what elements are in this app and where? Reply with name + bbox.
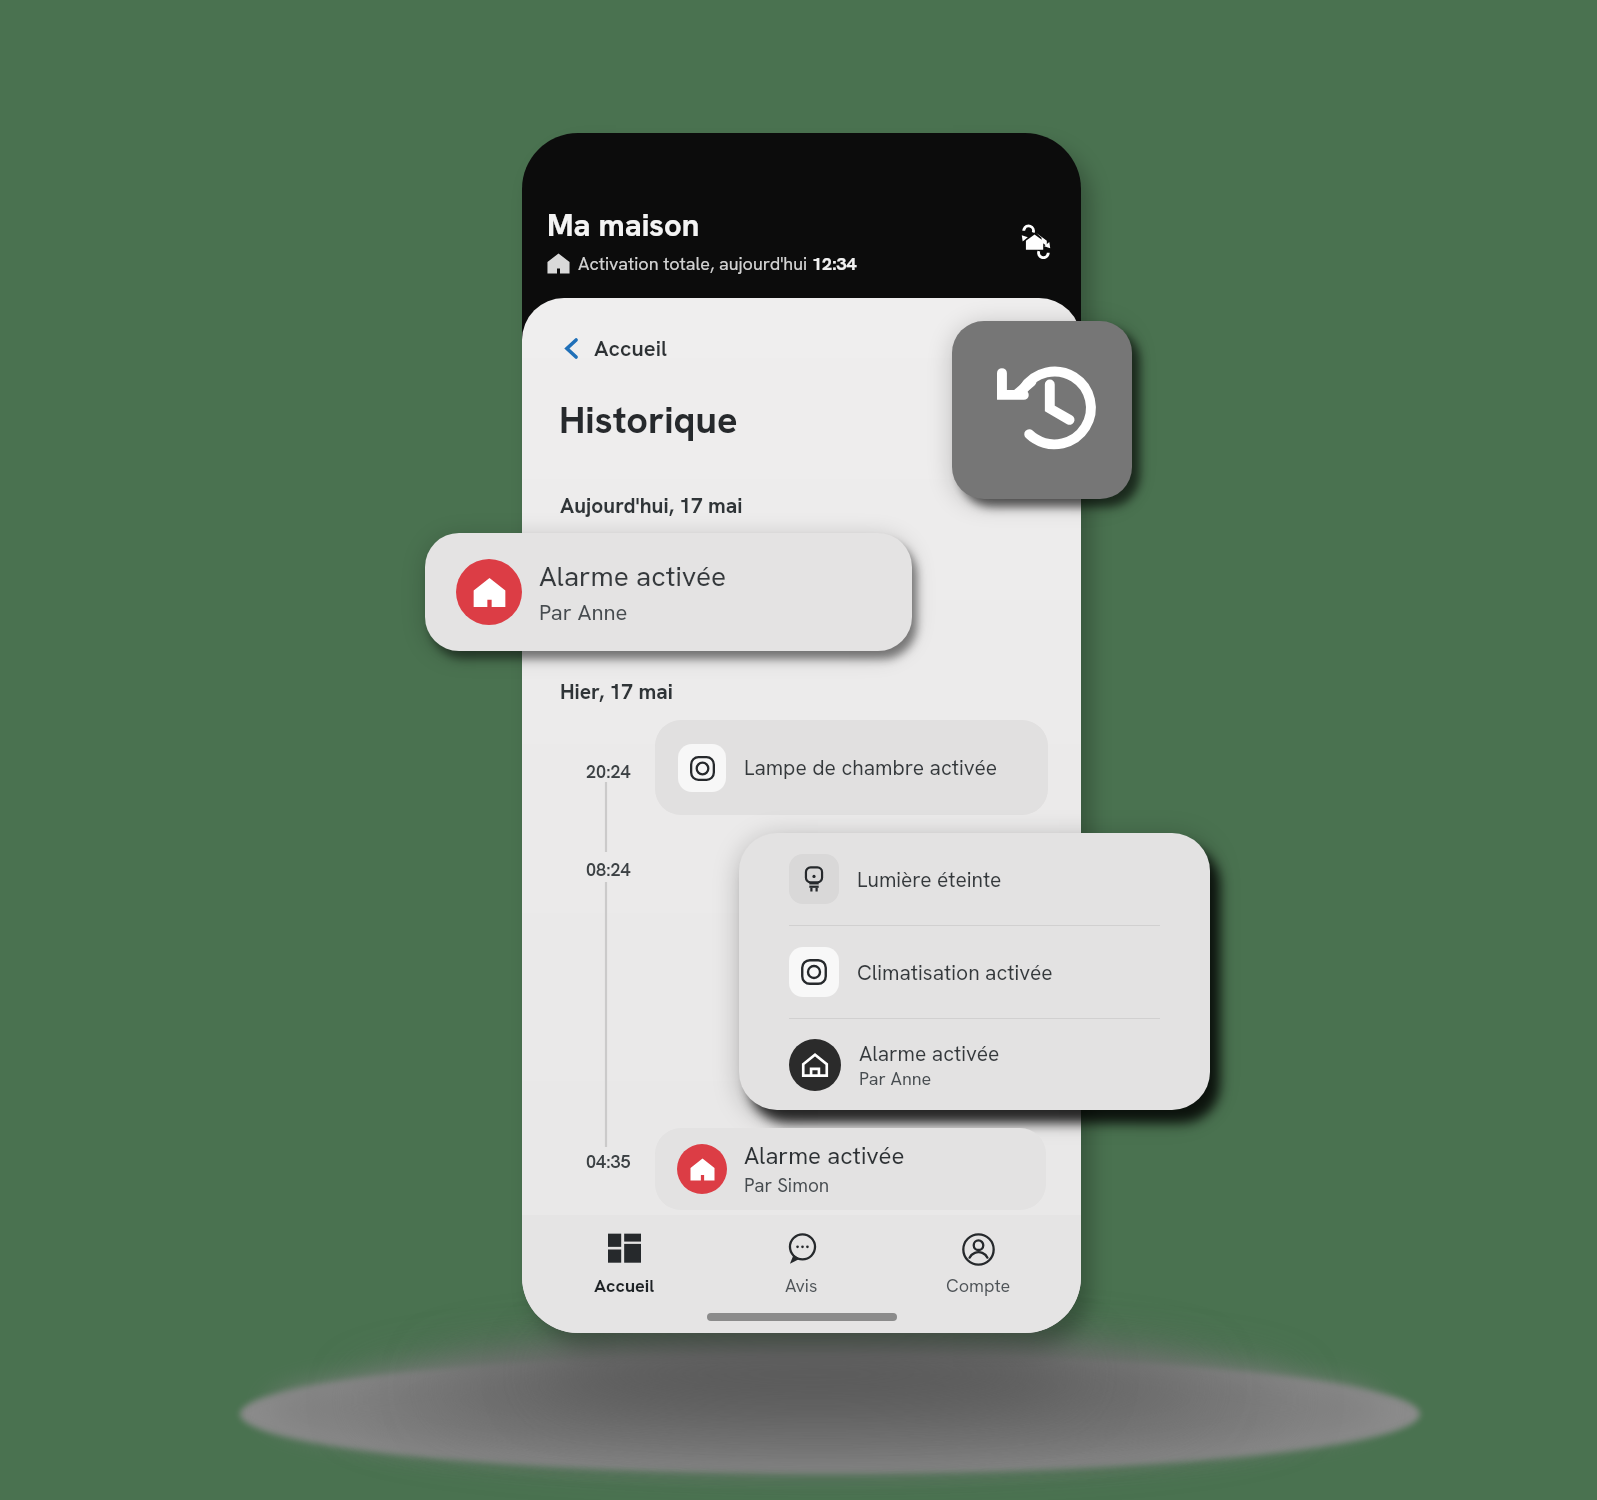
- button[interactable]: Climatisation activée: [739, 926, 1210, 1018]
- button[interactable]: Changer de maison: [1013, 217, 1059, 263]
- staticText: Alarme activée: [859, 1040, 1000, 1067]
- button[interactable]: Historique: [952, 321, 1132, 499]
- staticText: Accueil: [594, 1274, 655, 1297]
- staticText: 04:35: [586, 1150, 631, 1173]
- button[interactable]: Alarme activée: [655, 1128, 1046, 1210]
- staticText: Historique: [559, 395, 738, 445]
- staticText: Compte: [946, 1274, 1011, 1297]
- staticText: Par Simon: [744, 1173, 830, 1198]
- staticText: Alarme activée: [744, 1140, 905, 1171]
- button[interactable]: Accueil: [536, 1215, 713, 1297]
- staticText: Par Anne: [859, 1067, 932, 1090]
- staticText: Ma maison: [547, 205, 700, 245]
- staticText: Activation totale, aujourd'hui: [578, 252, 812, 275]
- staticText: 12:34: [812, 252, 857, 275]
- staticText: Climatisation activée: [857, 959, 1053, 986]
- button[interactable]: Compte: [890, 1215, 1067, 1297]
- button[interactable]: Avis: [713, 1215, 890, 1297]
- staticText: Accueil: [594, 334, 667, 363]
- staticText: 20:24: [586, 760, 631, 783]
- button[interactable]: Accueil: [560, 334, 667, 363]
- staticText: Par Anne: [539, 598, 628, 627]
- button[interactable]: Alarme activée: [739, 1019, 1210, 1110]
- staticText: Lampe de chambre activée: [744, 754, 998, 781]
- button[interactable]: Lumière éteinte: [739, 833, 1210, 925]
- button[interactable]: Alarme activée: [425, 533, 912, 651]
- staticText: Avis: [785, 1274, 818, 1297]
- staticText: Alarme activée: [539, 558, 727, 594]
- staticText: 08:24: [586, 858, 631, 881]
- staticText: Hier, 17 mai: [560, 678, 673, 705]
- staticText: Lumière éteinte: [857, 866, 1002, 893]
- staticText: Aujourd'hui, 17 mai: [560, 492, 743, 519]
- button[interactable]: Lampe de chambre activée: [655, 720, 1048, 815]
